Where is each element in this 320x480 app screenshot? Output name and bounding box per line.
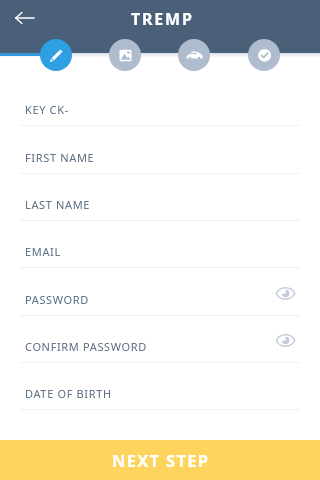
button[interactable]: EMAIL (0, 221, 320, 268)
button[interactable]: FIRST NAME (0, 127, 320, 174)
staticText: KEY CK- (25, 102, 69, 117)
staticText: PASSWORD (25, 292, 89, 307)
staticText: DATE OF BIRTH (25, 386, 112, 401)
staticText: NEXT STEP (112, 449, 210, 471)
button[interactable]: Add photo (109, 39, 141, 71)
staticText: CONFIRM PASSWORD (25, 339, 147, 354)
staticText: TREMP (131, 8, 194, 30)
button[interactable]: KEY CK- (0, 79, 320, 126)
button[interactable]: LAST NAME (0, 174, 320, 221)
staticText: FIRST NAME (25, 150, 95, 165)
staticText: LAST NAME (25, 197, 91, 212)
button[interactable]: CONFIRM PASSWORD (0, 316, 320, 363)
button[interactable]: NEXT STEP (0, 440, 320, 480)
button[interactable]: DATE OF BIRTH (0, 363, 320, 410)
button[interactable]: Show password (275, 330, 295, 350)
button[interactable]: Vehicle (178, 39, 210, 71)
button[interactable]: Back (11, 4, 39, 32)
button[interactable]: Show password (275, 283, 295, 303)
button[interactable]: PASSWORD (0, 269, 320, 316)
staticText: EMAIL (25, 244, 61, 259)
button[interactable]: Confirm (248, 39, 280, 71)
button[interactable]: Edit details (40, 39, 72, 71)
